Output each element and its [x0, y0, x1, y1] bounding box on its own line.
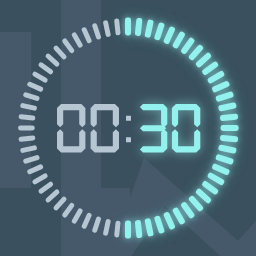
button[interactable]: Timer 00:30	[0, 0, 256, 256]
